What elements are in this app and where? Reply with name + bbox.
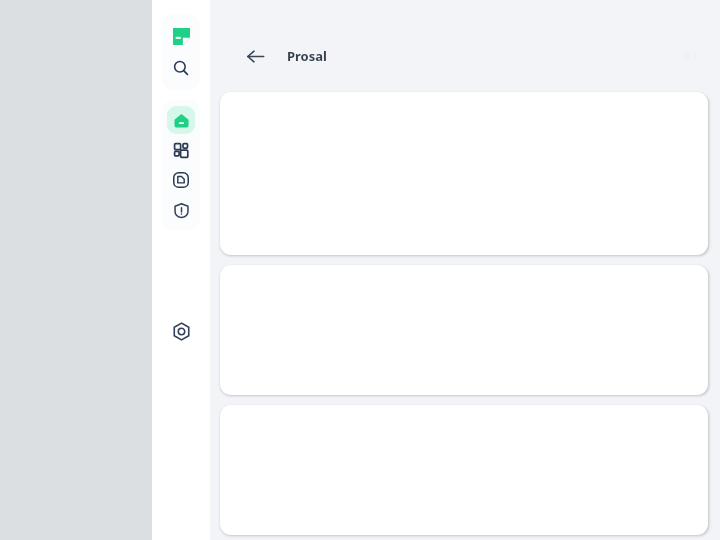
button[interactable]: Prosal logo — [168, 23, 194, 49]
button[interactable]: Settings — [166, 316, 196, 346]
button[interactable]: Search — [168, 55, 194, 81]
button[interactable]: Security — [167, 196, 195, 224]
staticText: Prosal — [287, 47, 327, 65]
button[interactable]: Dashboard — [167, 136, 195, 164]
button[interactable]: Back — [238, 39, 272, 73]
button[interactable]: Documents — [167, 166, 195, 194]
button[interactable]: Home — [167, 106, 195, 134]
